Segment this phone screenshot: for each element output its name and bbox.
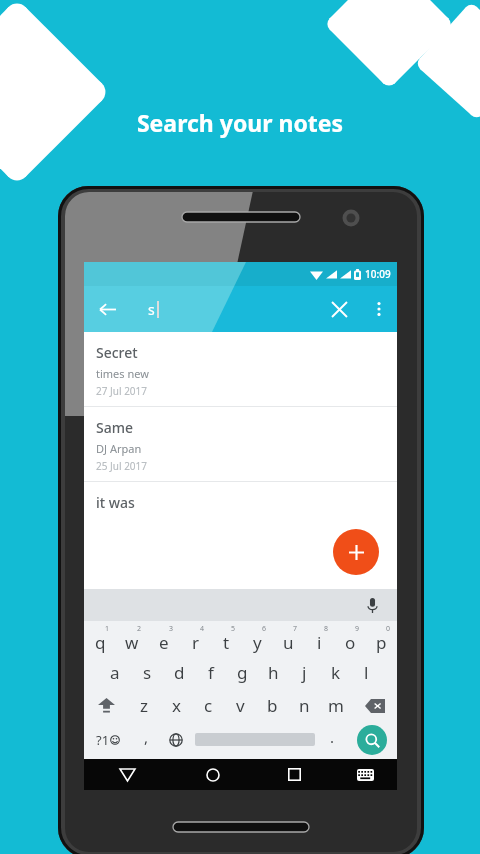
- button[interactable]: 3: [148, 623, 180, 656]
- button[interactable]: Add note: [333, 529, 379, 575]
- staticText: f: [208, 661, 214, 684]
- button[interactable]: j: [289, 656, 320, 689]
- staticText: i: [317, 631, 322, 654]
- staticText: 5: [231, 624, 236, 634]
- button[interactable]: 8: [304, 623, 335, 656]
- button[interactable]: Search: [357, 725, 387, 755]
- staticText: Same: [96, 418, 134, 437]
- staticText: l: [364, 661, 369, 684]
- staticText: 27 Jul 2017: [96, 384, 148, 398]
- staticText: p: [376, 631, 387, 654]
- staticText: 2: [137, 624, 142, 634]
- staticText: h: [268, 661, 279, 684]
- staticText: 1: [105, 624, 110, 634]
- staticText: r: [192, 631, 200, 654]
- button[interactable]: Secret: [84, 332, 397, 406]
- staticText: d: [174, 661, 185, 684]
- staticText: 9: [355, 624, 360, 634]
- staticText: Secret: [96, 343, 138, 362]
- staticText: 10:09: [365, 267, 391, 281]
- staticText: c: [204, 694, 213, 717]
- button[interactable]: Delete: [352, 689, 397, 722]
- staticText: 7: [293, 624, 298, 634]
- button[interactable]: More options: [361, 291, 397, 327]
- staticText: 8: [324, 624, 329, 634]
- staticText: y: [253, 631, 262, 654]
- button[interactable]: l: [351, 656, 382, 689]
- staticText: t: [223, 631, 230, 654]
- staticText: x: [172, 694, 181, 717]
- button[interactable]: x: [160, 689, 192, 722]
- staticText: 4: [200, 624, 205, 634]
- button[interactable]: a: [99, 656, 131, 689]
- button[interactable]: s: [131, 656, 163, 689]
- staticText: s: [143, 661, 152, 684]
- staticText: 3: [169, 624, 174, 634]
- staticText: times new: [96, 366, 149, 381]
- staticText: a: [110, 661, 120, 684]
- staticText: it was: [96, 493, 135, 512]
- button[interactable]: ?1: [84, 722, 132, 757]
- staticText: s: [148, 300, 155, 319]
- staticText: 0: [386, 624, 391, 634]
- staticText: 6: [262, 624, 267, 634]
- staticText: e: [159, 631, 169, 654]
- button[interactable]: ,: [132, 722, 160, 757]
- staticText: Search your notes: [0, 107, 480, 138]
- button[interactable]: h: [258, 656, 289, 689]
- staticText: q: [95, 631, 106, 654]
- staticText: z: [140, 694, 148, 717]
- button[interactable]: Same: [84, 407, 397, 481]
- button[interactable]: n: [288, 689, 320, 722]
- staticText: w: [125, 631, 139, 654]
- button[interactable]: m: [320, 689, 352, 722]
- staticText: g: [237, 661, 248, 684]
- button[interactable]: 6: [242, 623, 273, 656]
- staticText: n: [299, 694, 310, 717]
- button[interactable]: Keyboard: [333, 759, 397, 790]
- button[interactable]: Recents: [255, 759, 333, 790]
- button[interactable]: d: [163, 656, 195, 689]
- button[interactable]: Shift: [84, 689, 128, 722]
- button[interactable]: Clear: [317, 287, 361, 331]
- button[interactable]: .: [318, 722, 346, 757]
- button[interactable]: 4: [180, 623, 211, 656]
- staticText: .: [330, 727, 335, 747]
- button[interactable]: Home: [170, 759, 255, 790]
- button[interactable]: 9: [335, 623, 366, 656]
- button[interactable]: Back: [84, 286, 130, 332]
- staticText: k: [331, 661, 341, 684]
- button[interactable]: Voice input: [361, 594, 383, 616]
- staticText: v: [236, 694, 245, 717]
- button[interactable]: g: [227, 656, 258, 689]
- button[interactable]: Back: [84, 759, 170, 790]
- button[interactable]: 5: [211, 623, 242, 656]
- button[interactable]: k: [320, 656, 351, 689]
- button[interactable]: f: [195, 656, 227, 689]
- staticText: m: [328, 694, 344, 717]
- staticText: o: [345, 631, 356, 654]
- staticText: j: [302, 661, 307, 684]
- staticText: 25 Jul 2017: [96, 459, 148, 473]
- button[interactable]: 2: [116, 623, 148, 656]
- button[interactable]: it was: [84, 482, 397, 512]
- button[interactable]: 0: [366, 623, 397, 656]
- button[interactable]: Space: [192, 722, 318, 757]
- staticText: b: [267, 694, 278, 717]
- button[interactable]: v: [224, 689, 256, 722]
- staticText: ,: [144, 727, 149, 747]
- button[interactable]: c: [192, 689, 224, 722]
- button[interactable]: b: [256, 689, 288, 722]
- button[interactable]: 1: [84, 623, 116, 656]
- button[interactable]: Change language: [160, 722, 192, 757]
- button[interactable]: z: [128, 689, 160, 722]
- staticText: DJ Arpan: [96, 441, 142, 456]
- button[interactable]: 7: [273, 623, 304, 656]
- staticText: u: [283, 631, 294, 654]
- staticText: ?1: [96, 731, 110, 749]
